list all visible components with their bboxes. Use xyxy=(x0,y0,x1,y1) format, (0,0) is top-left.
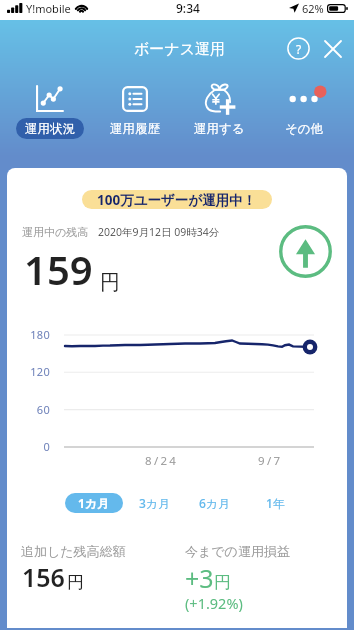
button[interactable]: 1年 xyxy=(254,493,296,513)
button[interactable]: その他 xyxy=(262,83,347,139)
staticText: 60 xyxy=(7,402,50,417)
staticText: 2020年9月12日 09時34分 xyxy=(98,225,220,239)
staticText: 運用する xyxy=(194,121,245,137)
button[interactable]: 6カ月 xyxy=(189,493,241,513)
button[interactable]: Close xyxy=(318,34,347,63)
staticText: 156 xyxy=(22,560,65,594)
staticText: 120 xyxy=(7,364,50,379)
staticText: 運用状況 xyxy=(25,121,75,137)
staticText: 今までの運用損益 xyxy=(185,543,290,559)
button[interactable]: 運用状況 xyxy=(8,83,92,139)
staticText: その他 xyxy=(285,121,324,137)
staticText: 1カ月 xyxy=(78,495,110,511)
button[interactable]: 運用する xyxy=(177,83,262,139)
staticText: 100万ユーザーが運用中！ xyxy=(97,191,257,209)
button[interactable]: 運用履歴 xyxy=(92,83,177,139)
staticText: 62% xyxy=(302,1,324,16)
staticText: 追加した残高総額 xyxy=(21,543,126,559)
staticText: ボーナス運用 xyxy=(134,40,226,59)
staticText: 円 xyxy=(67,572,84,593)
staticText: 1年 xyxy=(266,495,285,511)
staticText: 運用中の残高 xyxy=(22,225,89,239)
button[interactable]: 1カ月 xyxy=(65,493,123,513)
button[interactable]: 3カ月 xyxy=(129,493,181,513)
staticText: (+1.92%) xyxy=(185,593,243,613)
staticText: 0 xyxy=(7,439,50,454)
staticText: 9:34 xyxy=(176,0,200,16)
staticText: 8/24 xyxy=(145,453,179,469)
staticText: ? xyxy=(296,41,302,57)
staticText: +3 xyxy=(185,561,214,595)
staticText: 円 xyxy=(214,572,231,593)
staticText: Y!mobile xyxy=(26,1,71,16)
staticText: 180 xyxy=(7,327,50,342)
staticText: 6カ月 xyxy=(199,495,231,511)
staticText: 3カ月 xyxy=(139,495,171,511)
button[interactable]: Rising xyxy=(278,224,332,278)
staticText: 9/7 xyxy=(258,453,283,469)
staticText: 運用履歴 xyxy=(110,121,160,137)
button[interactable]: Help xyxy=(284,34,313,63)
staticText: 円 xyxy=(100,270,120,295)
staticText: 159 xyxy=(24,242,93,296)
